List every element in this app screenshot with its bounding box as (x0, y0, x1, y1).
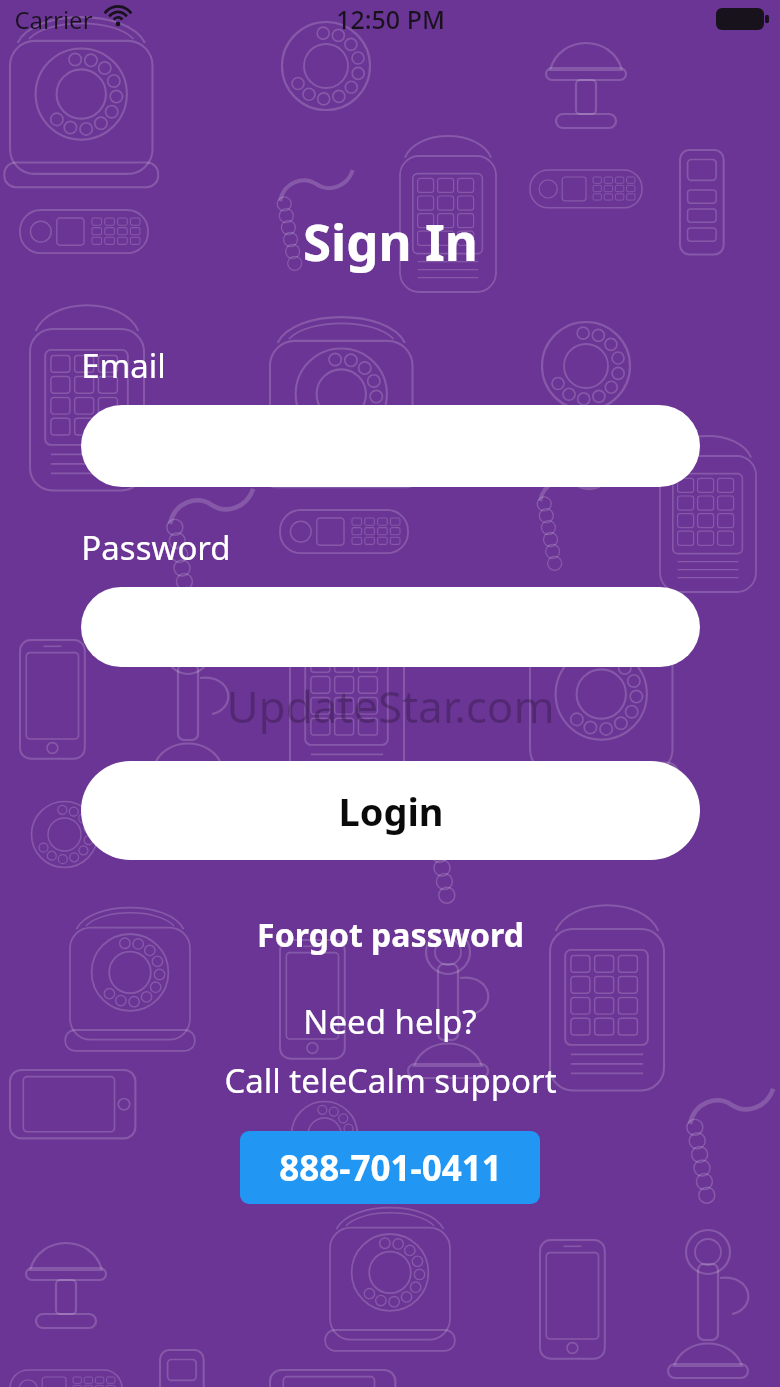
staticText: 888-701-0411 (279, 1144, 502, 1192)
button[interactable]: Login (81, 761, 700, 860)
button[interactable]: Call 888-701-0411 (240, 1131, 540, 1204)
staticText: Sign In (303, 206, 478, 275)
staticText: UpdateStar.com (226, 676, 555, 736)
staticText: Email (81, 343, 166, 388)
staticText: 12:50 PM (336, 2, 445, 36)
staticText: Need help? (303, 999, 477, 1044)
button[interactable] (81, 587, 700, 667)
button[interactable] (81, 405, 700, 487)
staticText: Carrier (14, 3, 93, 36)
button[interactable]: Forgot password (0, 913, 780, 957)
staticText: Password (81, 525, 231, 570)
staticText: Forgot password (257, 913, 524, 957)
staticText: Call teleCalm support (224, 1058, 557, 1103)
staticText: Login (338, 785, 444, 837)
